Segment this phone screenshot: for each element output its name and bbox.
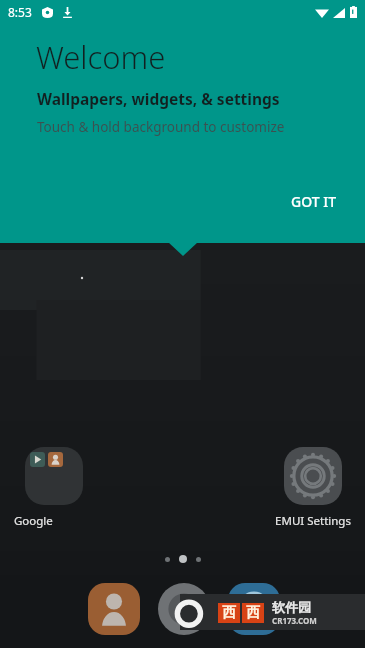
staticText: 软件园: [272, 599, 311, 615]
button[interactable]: [25, 447, 83, 505]
staticText: 8:53: [8, 4, 32, 20]
staticText: 西: [222, 604, 236, 622]
button[interactable]: Contacts: [88, 583, 140, 635]
button[interactable]: Camera: [158, 583, 210, 635]
staticText: Touch & hold background to customize: [37, 118, 285, 136]
staticText: Welcome: [36, 36, 166, 78]
staticText: GOT IT: [291, 192, 337, 211]
staticText: Wallpapers, widgets, & settings: [37, 88, 280, 109]
button[interactable]: EMUI Settings: [284, 447, 342, 505]
staticText: 西: [246, 604, 260, 622]
staticText: CR173.COM: [272, 615, 317, 626]
button[interactable]: GOT IT: [277, 184, 351, 219]
staticText: Google: [14, 513, 94, 529]
staticText: EMUI Settings: [275, 513, 351, 529]
button[interactable]: Gallery: [228, 583, 280, 635]
